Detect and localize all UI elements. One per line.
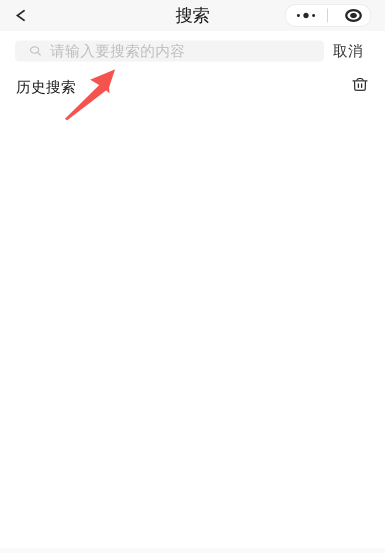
button[interactable]: 取消: [333, 40, 363, 62]
staticText: 搜索: [175, 5, 209, 26]
button[interactable]: Clear search history: [346, 72, 374, 102]
button[interactable]: Back: [11, 0, 31, 31]
staticText: 请输入要搜索的内容: [50, 42, 185, 60]
button[interactable]: Close: [328, 4, 374, 26]
staticText: 取消: [333, 42, 363, 60]
button[interactable]: More: [285, 4, 327, 26]
staticText: 历史搜索: [16, 78, 76, 96]
